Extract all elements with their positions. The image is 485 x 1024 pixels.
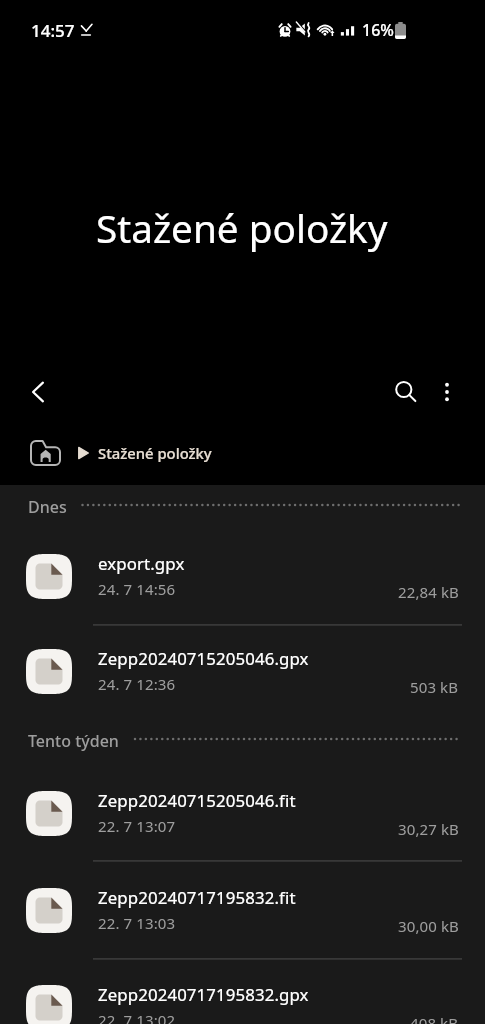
staticText: 24. 7 12:36 bbox=[98, 674, 176, 694]
staticText: 16% bbox=[362, 19, 394, 41]
staticText: 30,27 kB bbox=[398, 819, 459, 839]
button[interactable]: Navigate up bbox=[14, 368, 62, 416]
button[interactable]: Zepp20240715205046.fit bbox=[0, 765, 485, 860]
staticText: 30,00 kB bbox=[398, 916, 459, 936]
button[interactable]: Search bbox=[381, 368, 429, 416]
button[interactable]: export.gpx bbox=[0, 528, 485, 623]
staticText: 22. 7 13:03 bbox=[98, 913, 176, 933]
staticText: 22. 7 13:02 bbox=[98, 1010, 176, 1024]
staticText: Tento týden bbox=[28, 730, 119, 752]
staticText: Zepp20240715205046.fit bbox=[98, 789, 296, 812]
staticText: Stažené položky bbox=[98, 443, 212, 463]
staticText: Zepp20240717195832.fit bbox=[98, 886, 296, 909]
staticText: Zepp20240717195832.gpx bbox=[98, 983, 309, 1006]
staticText: 408 kB bbox=[410, 1013, 459, 1024]
staticText: 24. 7 14:56 bbox=[98, 579, 176, 599]
staticText: Dnes bbox=[28, 496, 67, 518]
button[interactable]: Stažené položky bbox=[73, 437, 212, 469]
button[interactable]: Zepp20240717195832.fit bbox=[0, 862, 485, 957]
button[interactable]: More options bbox=[423, 368, 471, 416]
staticText: 22,84 kB bbox=[398, 582, 459, 602]
staticText: 22. 7 13:07 bbox=[98, 816, 176, 836]
staticText: 14:57 bbox=[31, 19, 75, 42]
staticText: Zepp20240715205046.gpx bbox=[98, 647, 309, 670]
staticText: export.gpx bbox=[98, 552, 185, 575]
button[interactable]: Zepp20240715205046.gpx bbox=[0, 623, 485, 718]
button[interactable]: Home folder bbox=[26, 437, 65, 469]
button[interactable]: Zepp20240717195832.gpx bbox=[0, 959, 485, 1024]
staticText: Stažené položky bbox=[96, 202, 388, 255]
staticText: 503 kB bbox=[410, 677, 459, 697]
